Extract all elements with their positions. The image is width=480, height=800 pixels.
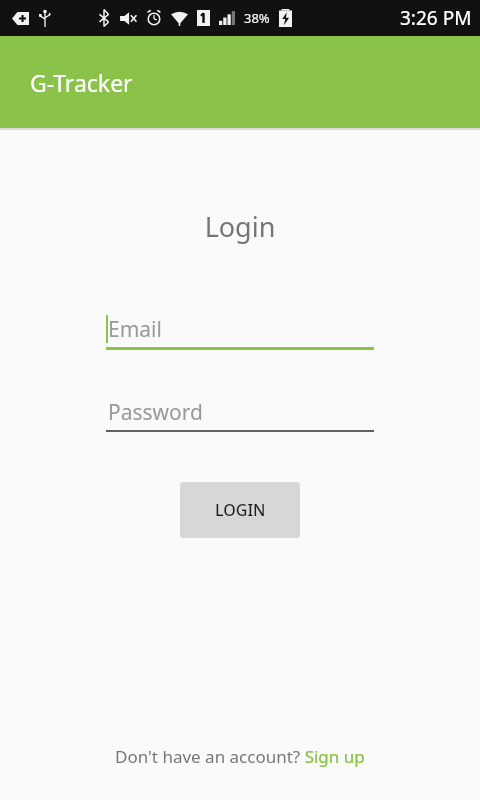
button[interactable]: Password	[106, 394, 374, 432]
button[interactable]: Email	[106, 311, 374, 350]
staticText: Don't have an account? Sign up	[115, 745, 365, 768]
staticText: LOGIN	[215, 499, 266, 521]
button[interactable]: LOGIN	[180, 482, 300, 538]
button[interactable]: Don't have an account? Sign up	[115, 745, 365, 768]
staticText: G-Tracker	[30, 67, 133, 98]
staticText: Email	[108, 315, 162, 344]
staticText: Password	[108, 398, 203, 427]
staticText: Login	[0, 208, 480, 245]
staticText: 3:26 PM	[400, 5, 472, 31]
staticText: 38%	[244, 9, 270, 27]
